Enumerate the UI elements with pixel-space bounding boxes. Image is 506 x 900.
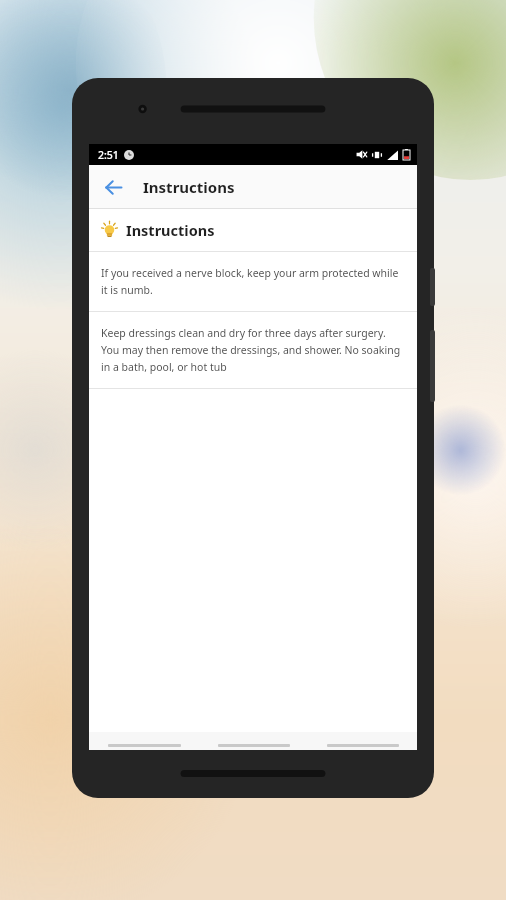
button[interactable]: Tab 3 [308, 732, 417, 750]
staticText: If you received a nerve block, keep your… [101, 266, 405, 297]
button[interactable]: Back [93, 167, 133, 207]
staticText: Keep dressings clean and dry for three d… [101, 326, 405, 374]
staticText: 2:51 [98, 148, 119, 162]
button[interactable]: If you received a nerve block, keep your… [89, 252, 417, 311]
button[interactable]: Instructions [89, 209, 417, 251]
button[interactable]: Keep dressings clean and dry for three d… [89, 312, 417, 388]
staticText: Instructions [143, 177, 235, 197]
button[interactable]: Tab 2 [199, 732, 308, 750]
staticText: Instructions [126, 220, 215, 240]
button[interactable]: Tab 1 [89, 732, 199, 750]
